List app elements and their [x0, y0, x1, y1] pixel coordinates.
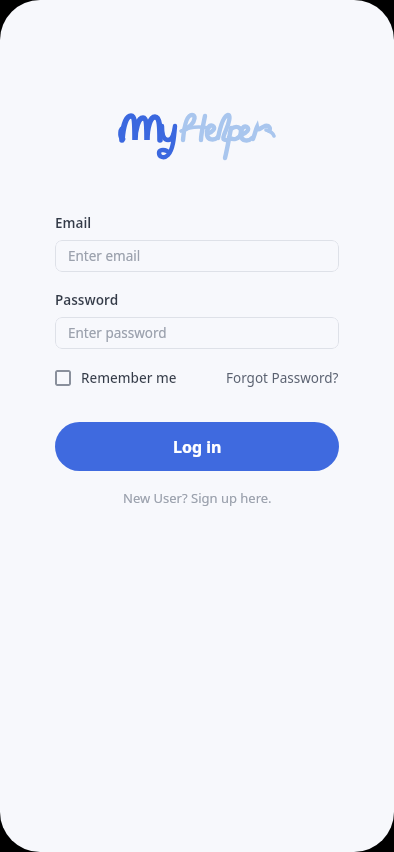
staticText: Email: [55, 214, 92, 232]
other: MyHelper logo: [117, 106, 277, 162]
staticText: Log in: [173, 436, 222, 458]
button[interactable]: Enter password: [55, 317, 339, 349]
button[interactable]: Log in: [55, 422, 339, 471]
button[interactable]: Forgot Password?: [226, 369, 339, 387]
staticText: Password: [55, 291, 119, 309]
staticText: Enter email: [68, 247, 141, 265]
staticText: Enter password: [68, 324, 167, 342]
staticText: Remember me: [81, 369, 177, 387]
staticText: Forgot Password?: [226, 369, 339, 387]
button[interactable]: Remember me: [55, 369, 177, 387]
staticText: New User? Sign up here.: [123, 489, 272, 507]
button[interactable]: Enter email: [55, 240, 339, 272]
button[interactable]: New User? Sign up here.: [55, 489, 339, 507]
